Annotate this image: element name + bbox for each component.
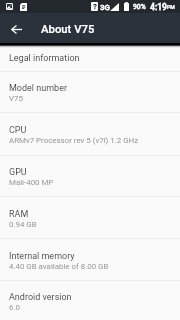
- staticText: Android version: [9, 292, 72, 303]
- staticText: GPU: [9, 167, 27, 178]
- staticText: RAM: [9, 209, 29, 220]
- staticText: Legal information: [9, 53, 80, 64]
- staticText: ARMv7 Processor rev 5 (v7l) 1.2 GHz: [9, 136, 139, 145]
- staticText: About V75: [41, 23, 95, 36]
- staticText: ?: [93, 2, 97, 11]
- button[interactable]: GPU: [0, 156, 180, 196]
- staticText: 4:19: [150, 2, 167, 12]
- button[interactable]: Legal information: [0, 44, 180, 71]
- button[interactable]: Internal memory: [0, 239, 180, 280]
- staticText: V75: [9, 94, 23, 103]
- button[interactable]: Model number: [0, 72, 180, 112]
- button[interactable]: RAM: [0, 197, 180, 238]
- staticText: 3G: [100, 3, 110, 12]
- button[interactable]: CPU: [0, 113, 180, 155]
- staticText: Internal memory: [9, 251, 75, 262]
- button[interactable]: Back: [3, 14, 29, 45]
- button[interactable]: Android version: [0, 281, 180, 320]
- staticText: 90%: [133, 3, 146, 11]
- staticText: 4.40 GB available of 8.00 GB: [9, 262, 109, 271]
- staticText: Mali-400 MP: [9, 178, 54, 187]
- staticText: CPU: [9, 125, 27, 136]
- staticText: Model number: [9, 83, 67, 94]
- staticText: 6.0: [9, 303, 20, 312]
- staticText: PM: [167, 4, 175, 10]
- staticText: 0.94 GB: [9, 220, 37, 229]
